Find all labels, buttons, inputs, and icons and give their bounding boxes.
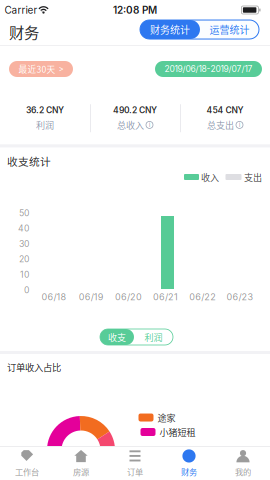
staticText: 06/23 bbox=[226, 291, 253, 302]
staticText: 房源 bbox=[73, 466, 89, 478]
staticText: 30 bbox=[19, 239, 29, 249]
staticText: 收入 bbox=[201, 170, 219, 183]
staticText: 订单收入占比 bbox=[7, 360, 61, 374]
button[interactable]: 运营统计 bbox=[200, 20, 259, 39]
button[interactable]: 利润 bbox=[134, 329, 173, 345]
staticText: 最近30天 bbox=[18, 63, 55, 75]
button[interactable]: 财务统计 bbox=[140, 20, 200, 39]
staticText: 20 bbox=[19, 254, 29, 264]
staticText: 财务统计 bbox=[150, 22, 190, 37]
staticText: 小猪短租 bbox=[159, 425, 195, 438]
staticText: 06/19 bbox=[79, 291, 104, 302]
button[interactable]: 房源 bbox=[54, 446, 108, 480]
staticText: > bbox=[58, 64, 63, 74]
staticText: Carrier bbox=[4, 4, 37, 16]
staticText: 财务 bbox=[181, 466, 197, 478]
staticText: 36.2 CNY bbox=[26, 105, 64, 115]
staticText: 12:08 PM bbox=[113, 4, 157, 16]
staticText: 我的 bbox=[235, 466, 251, 478]
staticText: 06/18 bbox=[41, 291, 66, 302]
staticText: 40 bbox=[18, 223, 29, 234]
button[interactable]: 订单 bbox=[108, 446, 162, 480]
staticText: i bbox=[239, 121, 240, 128]
staticText: 支出 bbox=[244, 170, 262, 183]
staticText: 运营统计 bbox=[209, 22, 249, 37]
staticText: 454 CNY bbox=[206, 105, 243, 115]
staticText: 0 bbox=[24, 285, 29, 295]
staticText: 利润 bbox=[144, 330, 162, 343]
button[interactable]: 我的 bbox=[216, 446, 270, 480]
button[interactable]: 最近30天 bbox=[9, 61, 73, 77]
staticText: 订单 bbox=[127, 466, 143, 478]
staticText: 2019/06/18-2019/07/17 bbox=[164, 64, 252, 74]
staticText: 利润 bbox=[36, 118, 54, 131]
staticText: 06/20 bbox=[115, 291, 142, 302]
staticText: 总收入 bbox=[117, 118, 144, 131]
staticText: 总支出 bbox=[207, 118, 234, 131]
staticText: 财务 bbox=[9, 20, 39, 43]
staticText: i bbox=[149, 121, 150, 128]
staticText: 490.2 CNY bbox=[113, 105, 157, 115]
button[interactable]: 收支 bbox=[100, 329, 134, 345]
staticText: 06/22 bbox=[189, 291, 216, 302]
staticText: 收支统计 bbox=[7, 153, 51, 169]
staticText: 10 bbox=[20, 269, 29, 280]
staticText: 收支 bbox=[108, 330, 126, 343]
button[interactable]: 工作台 bbox=[0, 446, 54, 480]
button[interactable]: 财务 bbox=[162, 446, 216, 480]
button[interactable]: 2019/06/18-2019/07/17 bbox=[155, 61, 262, 77]
staticText: 途家 bbox=[157, 411, 175, 424]
staticText: 06/21 bbox=[153, 291, 178, 302]
staticText: 工作台 bbox=[15, 466, 39, 478]
staticText: 50 bbox=[19, 208, 29, 218]
